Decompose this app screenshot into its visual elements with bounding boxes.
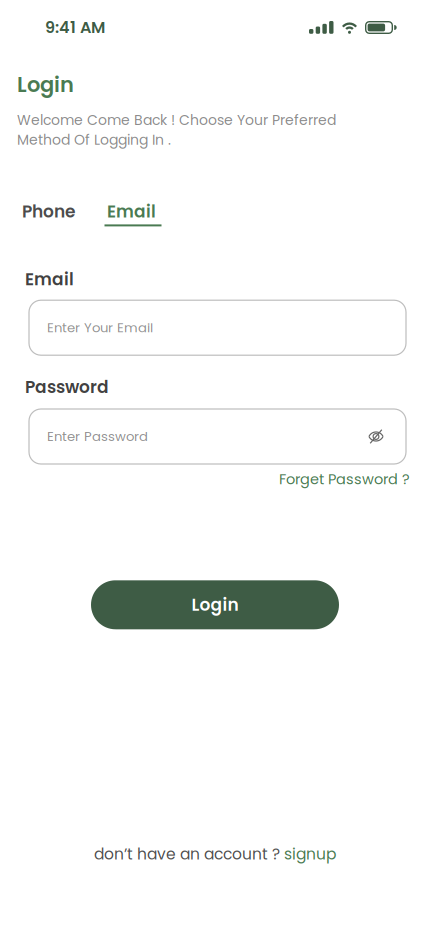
staticText: Email [107,200,156,223]
button[interactable]: signup [284,843,336,865]
staticText: Login [17,70,74,99]
button[interactable]: Login [91,580,339,629]
staticText: Enter Your Email [47,318,153,337]
staticText: Login [191,593,238,617]
staticText: don’t have an account ? [94,843,284,865]
button[interactable]: Phone [22,200,75,223]
staticText: signup [284,843,336,865]
button[interactable]: Email [107,200,164,226]
staticText: Enter Password [47,427,148,446]
button[interactable]: Show password [366,427,386,445]
staticText: Email [25,267,74,291]
staticText: 9:41 AM [45,16,105,39]
button[interactable]: Forget Password ? [279,469,410,489]
staticText: Welcome Come Back ! Choose Your Preferre… [17,110,336,150]
staticText: Forget Password ? [279,469,410,489]
staticText: Phone [22,200,75,223]
staticText: Password [25,375,109,399]
